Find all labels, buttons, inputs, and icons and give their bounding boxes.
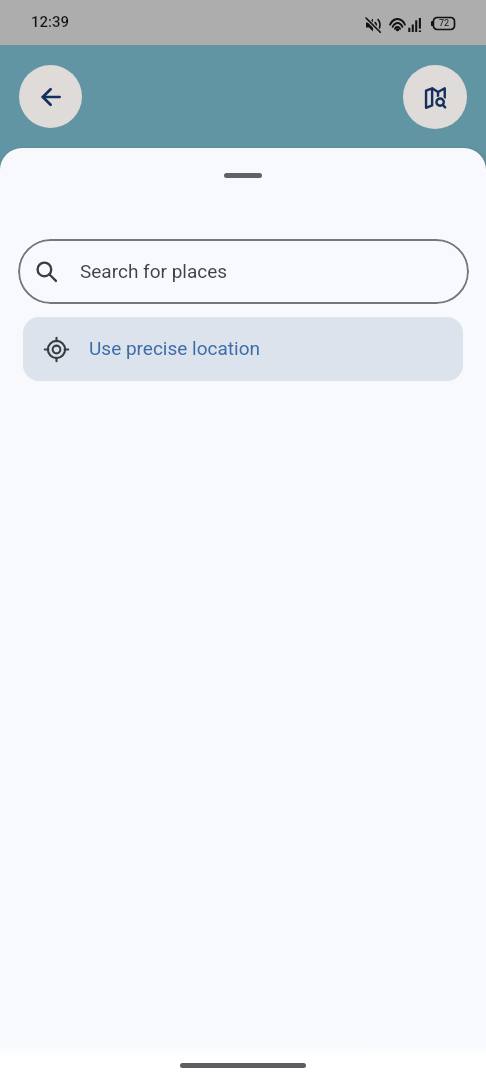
button[interactable]: Search for places xyxy=(18,239,469,304)
staticText: 12:39 xyxy=(31,13,70,31)
staticText: 72 xyxy=(439,18,450,29)
staticText: Use precise location xyxy=(89,337,260,359)
staticText: Search for places xyxy=(80,260,228,282)
button[interactable]: Search this map xyxy=(403,65,467,129)
button[interactable]: Back xyxy=(19,65,82,128)
button[interactable]: Use precise location xyxy=(23,317,463,381)
